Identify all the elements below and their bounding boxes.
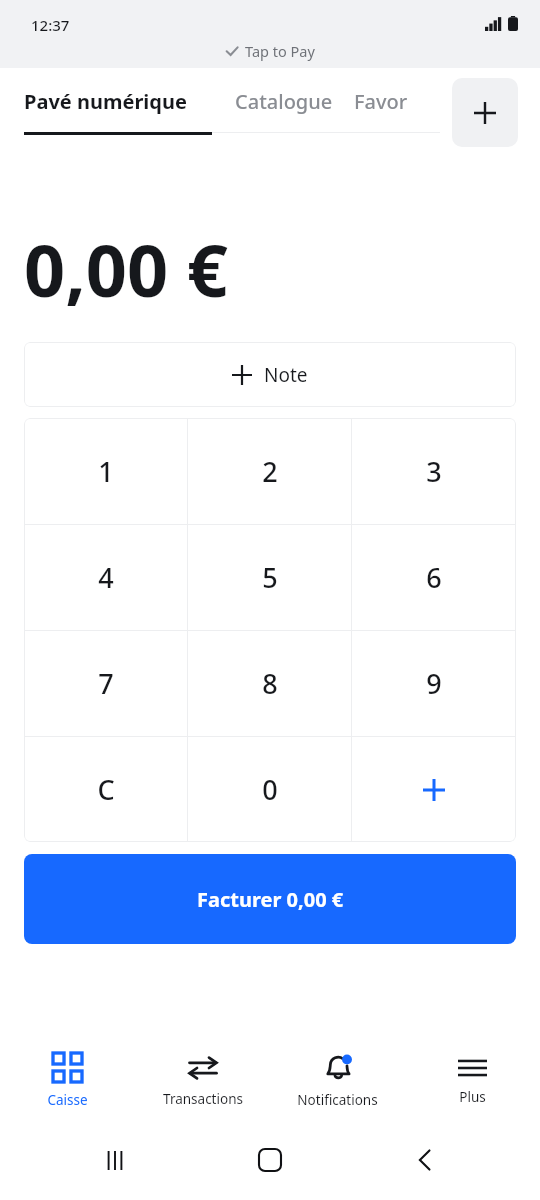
button[interactable]: 9 [352,631,516,736]
button[interactable]: Back [385,1120,465,1200]
staticText: Catalogue [235,88,333,115]
staticText: 4 [98,559,114,596]
staticText: 12:37 [31,15,70,35]
button[interactable] [352,737,516,842]
button[interactable]: Transactions [135,1038,270,1120]
staticText: Notifications [297,1091,378,1109]
staticText: Plus [459,1088,486,1106]
button[interactable]: Favor [354,88,408,115]
button[interactable]: Caisse [0,1038,135,1120]
button[interactable]: Note [24,342,516,407]
staticText: Favor [354,88,408,115]
button[interactable]: Facturer 0,00 € [24,854,516,944]
staticText: 3 [426,453,442,490]
staticText: 0,00 € [24,220,228,318]
button[interactable]: 7 [24,631,188,736]
staticText: Facturer 0,00 € [197,886,344,913]
staticText: 7 [98,665,114,702]
button[interactable]: 3 [352,418,516,524]
staticText: C [97,771,115,808]
staticText: 8 [262,665,278,702]
button[interactable]: 8 [188,631,352,736]
staticText: Transactions [163,1090,243,1108]
button[interactable]: 5 [188,525,352,630]
button[interactable]: 0 [188,737,352,842]
button[interactable]: 6 [352,525,516,630]
button[interactable]: Recents [75,1120,155,1200]
staticText: Pavé numérique [24,88,187,115]
button[interactable]: Notifications [270,1038,405,1120]
staticText: 5 [262,559,278,596]
button[interactable]: 4 [24,525,188,630]
staticText: 0 [262,771,278,808]
button[interactable]: Home [230,1120,310,1200]
staticText: 9 [426,665,442,702]
staticText: Caisse [47,1091,88,1109]
button[interactable]: Add [452,78,518,147]
button[interactable]: 2 [188,418,352,524]
staticText: 1 [98,453,114,490]
staticText: 6 [426,559,442,596]
button[interactable]: Pavé numérique [24,88,212,135]
staticText: Note [264,362,308,388]
button[interactable]: Plus [405,1038,540,1120]
staticText: 2 [262,453,278,490]
button[interactable]: 1 [24,418,188,524]
button[interactable]: C [24,737,188,842]
button[interactable]: Catalogue [235,88,333,115]
staticText: Tap to Pay [245,41,315,61]
